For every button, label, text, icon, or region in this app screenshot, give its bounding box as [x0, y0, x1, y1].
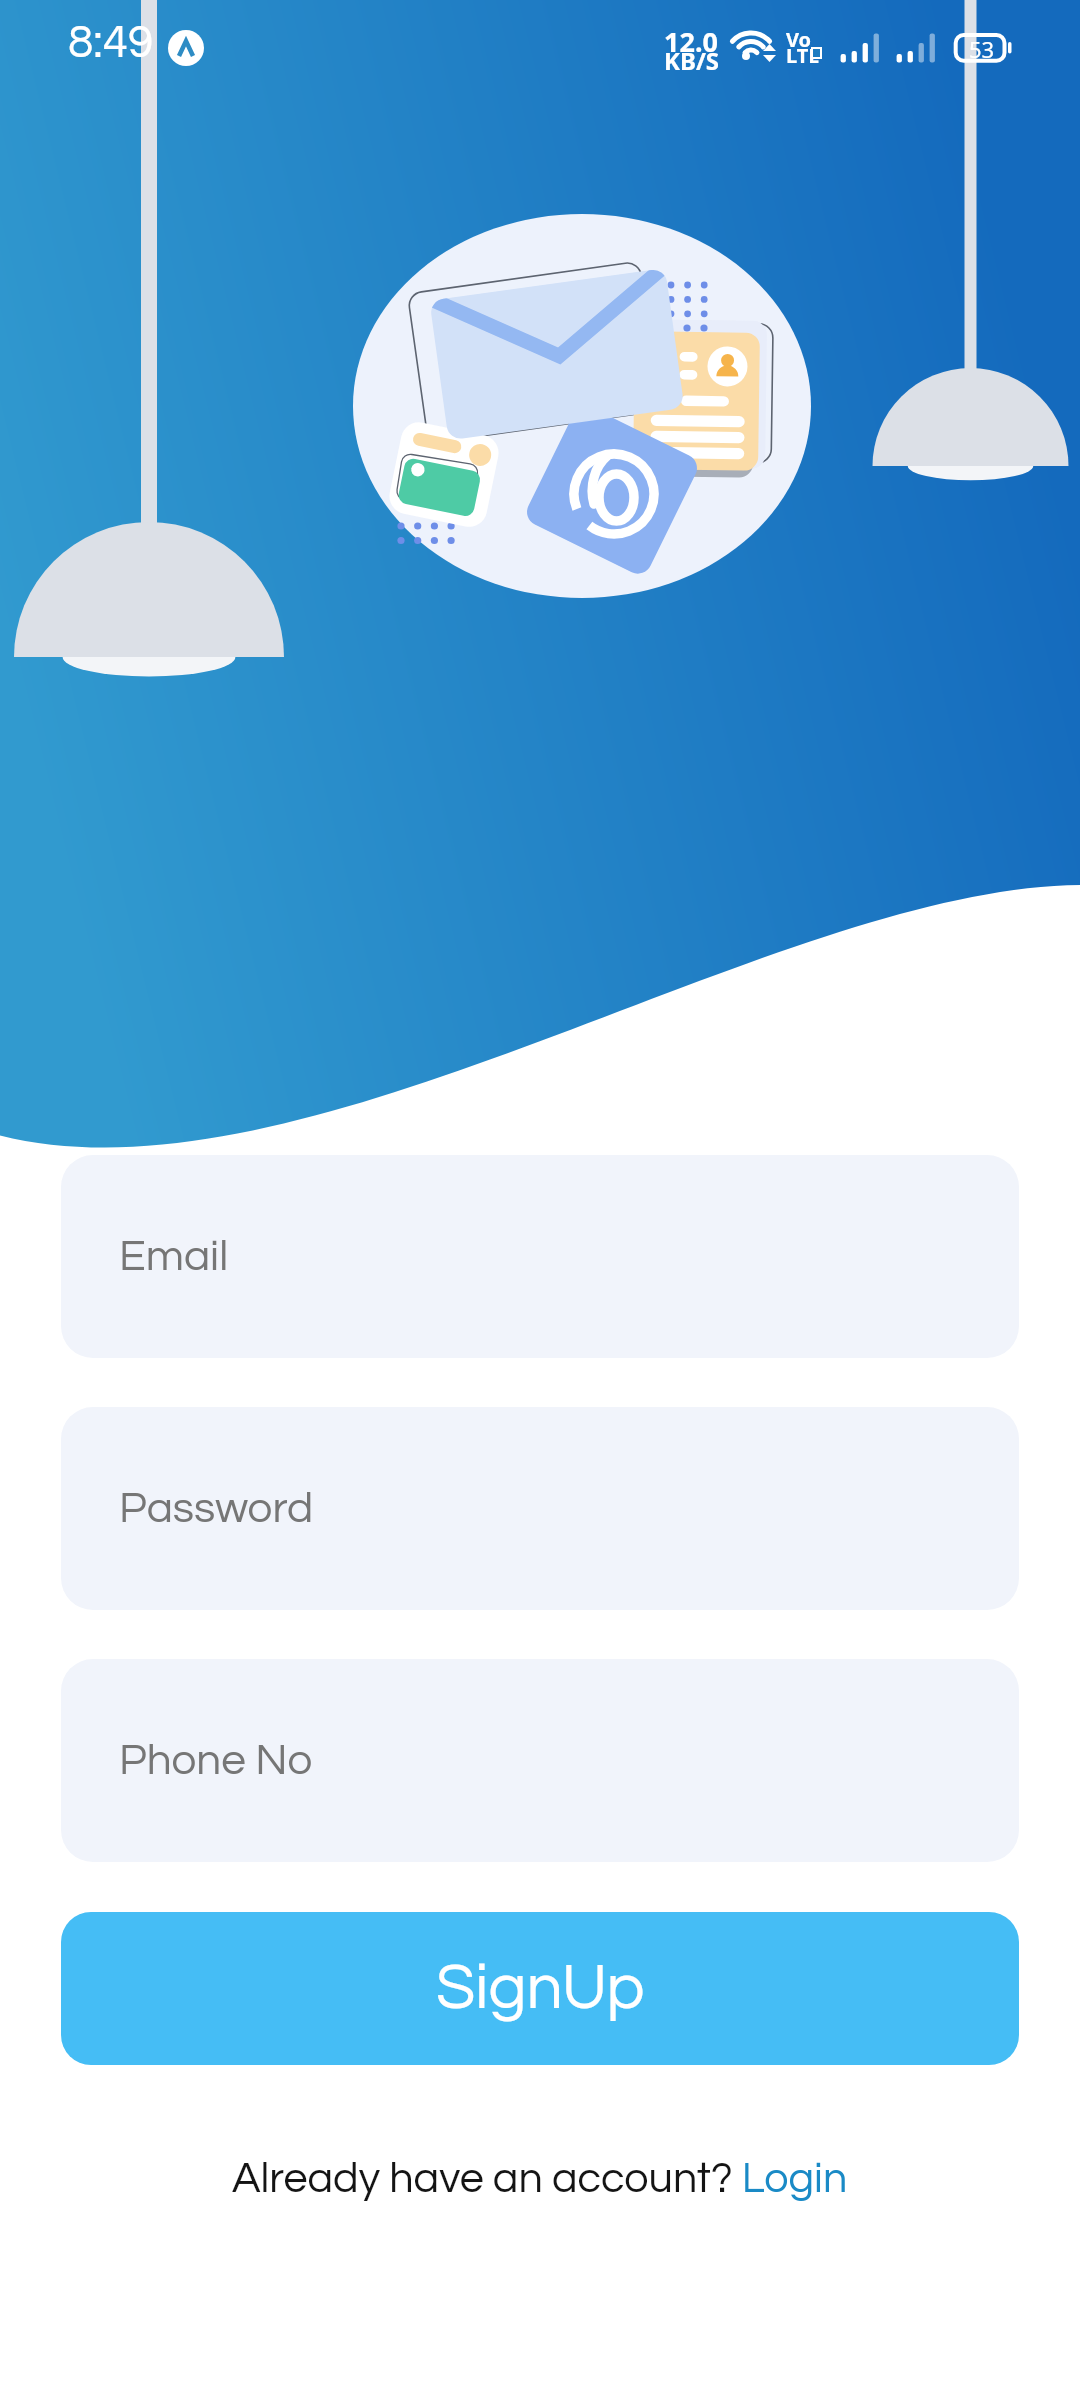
staticText: Already have an account? Login [232, 2157, 848, 2201]
staticText: Email [119, 1234, 229, 1279]
staticText: 53 [969, 34, 995, 64]
staticText: Phone No [119, 1738, 313, 1783]
staticText: 8:49 [68, 19, 154, 66]
staticText: 12.0 [664, 23, 718, 60]
staticText: Password [119, 1486, 314, 1531]
staticText: KB/S [664, 44, 720, 77]
button[interactable]: Phone No [61, 1659, 1019, 1862]
staticText: LTE [786, 42, 820, 69]
staticText: Vo [786, 26, 812, 53]
button[interactable]: Email [61, 1155, 1019, 1358]
button[interactable]: Already have an account? Login [232, 2157, 848, 2201]
staticText: SignUp [436, 1956, 645, 2022]
button[interactable]: Password [61, 1407, 1019, 1610]
button[interactable]: SignUp [61, 1912, 1019, 2065]
